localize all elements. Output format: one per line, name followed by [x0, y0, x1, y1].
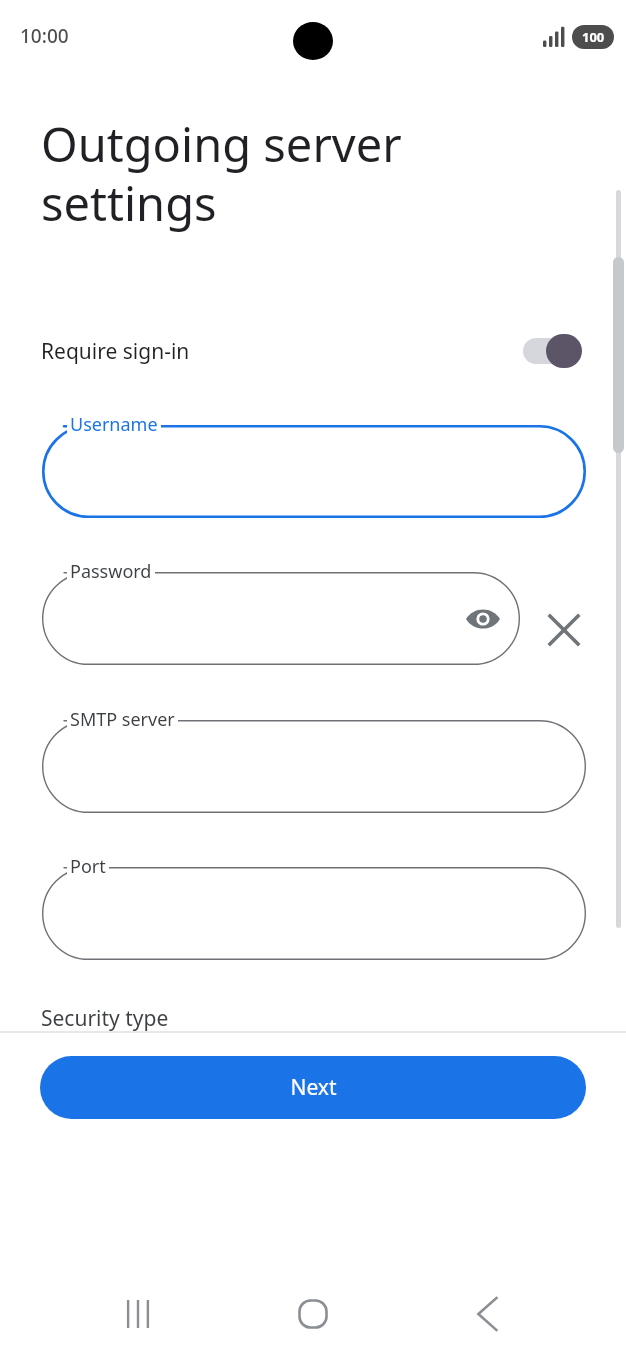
staticText: 100	[582, 28, 605, 46]
button[interactable]: Next	[40, 1056, 586, 1119]
button[interactable]: Require sign-in	[0, 322, 626, 380]
button[interactable]: Clear password	[537, 603, 591, 657]
staticText: Security type	[41, 1004, 169, 1033]
staticText: Username	[70, 412, 158, 437]
button[interactable]: SMTP server	[42, 720, 586, 813]
button[interactable]: Show password	[456, 592, 510, 646]
staticText: SMTP server	[70, 707, 175, 732]
button[interactable]: Home	[273, 1270, 353, 1358]
staticText: Outgoing server settings	[41, 112, 561, 234]
button[interactable]: Password	[42, 572, 520, 665]
staticText: Port	[70, 854, 106, 879]
button[interactable]: Back	[448, 1270, 528, 1358]
button[interactable]: Port	[42, 867, 586, 960]
staticText: Password	[70, 559, 152, 584]
staticText: Require sign-in	[41, 337, 190, 366]
staticText: 10:00	[20, 23, 69, 49]
button[interactable]: Recent apps	[98, 1270, 178, 1358]
staticText: Next	[290, 1073, 337, 1102]
button[interactable]: Username	[42, 425, 586, 518]
